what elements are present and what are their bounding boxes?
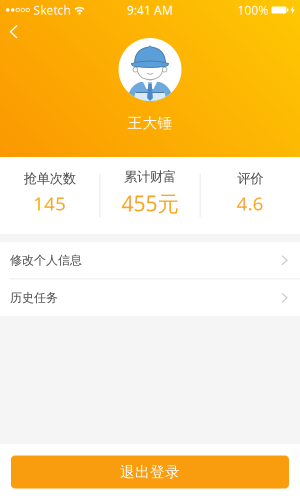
staticText: 145 [33, 191, 66, 216]
staticText: 累计财富 [124, 169, 176, 185]
staticText: Sketch [33, 2, 70, 18]
staticText: 4.6 [237, 191, 264, 216]
staticText: 455元 [121, 189, 178, 217]
staticText: 100% [237, 2, 268, 18]
staticText: 9:41 AM [127, 2, 173, 18]
staticText: 抢单次数 [24, 170, 76, 187]
staticText: 评价 [237, 170, 263, 187]
staticText: 历史任务 [10, 290, 58, 305]
button[interactable]: 退出登录 [11, 455, 289, 488]
staticText: 退出登录 [120, 463, 180, 481]
staticText: 王大锤 [127, 114, 172, 132]
button[interactable]: Back [3, 18, 25, 45]
staticText: 修改个人信息 [10, 253, 82, 268]
button[interactable]: 修改个人信息 [0, 242, 300, 278]
button[interactable]: 历史任务 [0, 279, 300, 316]
